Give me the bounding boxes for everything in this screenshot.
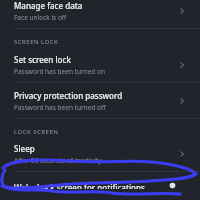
button[interactable]: Toggle wake lock screen for notification… [167, 182, 178, 189]
button[interactable]: Sleep [0, 139, 200, 171]
staticText: Sleep [14, 143, 35, 154]
staticText: Set screen lock [14, 54, 71, 65]
staticText: SCREEN LOCK [14, 38, 59, 46]
button[interactable]: Privacy protection password [0, 83, 200, 118]
staticText: After 30 seconds of inactivity [14, 156, 102, 165]
staticText: Password has been turned on [14, 67, 105, 76]
staticText: Privacy protection password [14, 90, 123, 101]
staticText: LOCK SCREEN [14, 128, 59, 136]
button[interactable]: Wake Lock screen for notifications [0, 172, 200, 200]
staticText: Password has been turned off [14, 103, 106, 112]
button[interactable]: Manage face data [0, 0, 200, 28]
staticText: Face unlock is off [14, 13, 67, 22]
staticText: Wake Lock screen for notifications [14, 182, 145, 189]
staticText: Manage face data [14, 0, 83, 11]
button[interactable]: Set screen lock [0, 49, 200, 82]
